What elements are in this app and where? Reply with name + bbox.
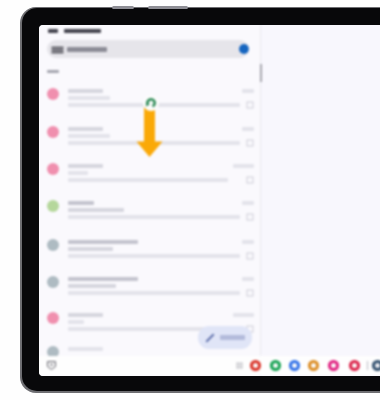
other: Archive <box>247 140 253 146</box>
button[interactable]: App <box>372 360 380 371</box>
other: All apps <box>236 362 243 369</box>
button[interactable] <box>198 326 252 349</box>
other: Open navigation menu <box>52 47 63 53</box>
other: Inbox <box>47 361 56 370</box>
button[interactable]: App <box>328 360 339 371</box>
other: Archive <box>247 253 253 259</box>
button[interactable]: App <box>270 360 281 371</box>
button[interactable]: Open navigation menu <box>47 40 249 58</box>
button[interactable]: App <box>349 360 360 371</box>
button[interactable] <box>39 227 260 263</box>
button[interactable] <box>39 114 260 150</box>
button[interactable] <box>39 300 260 336</box>
button[interactable]: App <box>308 360 319 371</box>
button[interactable]: App <box>289 360 300 371</box>
button[interactable] <box>39 264 260 300</box>
button[interactable] <box>39 188 260 224</box>
button[interactable]: Account <box>239 44 249 54</box>
other: Archive <box>247 290 253 296</box>
button[interactable]: App <box>250 360 261 371</box>
other: Archive <box>247 102 253 108</box>
button[interactable] <box>39 151 260 187</box>
other: Archive <box>247 214 253 220</box>
button[interactable] <box>39 334 260 370</box>
other: Archive <box>247 177 253 183</box>
button[interactable] <box>39 76 260 112</box>
other: Archive <box>247 326 253 332</box>
